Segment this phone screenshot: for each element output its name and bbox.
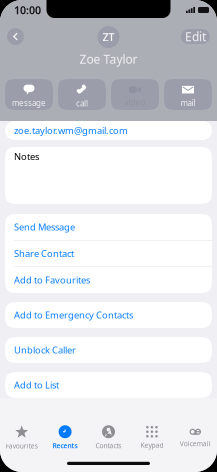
staticText: Edit (185, 29, 206, 44)
button[interactable]: Unblock Caller (5, 337, 212, 363)
staticText: Contacts (95, 441, 121, 450)
button[interactable]: Contacts (87, 425, 130, 450)
staticText: Recents (53, 441, 78, 450)
staticText: Unblock Caller (14, 344, 76, 356)
button[interactable]: Recents (43, 425, 87, 450)
staticText: call (76, 98, 88, 109)
staticText: Add to Emergency Contacts (14, 309, 133, 321)
staticText: video (124, 97, 145, 108)
staticText: zoe.taylor.wm@gmail.com (14, 124, 128, 137)
button[interactable]: Voicemail (174, 427, 217, 448)
staticText: Notes (14, 150, 39, 163)
button[interactable]: mail (164, 79, 212, 110)
staticText: Add to Favourites (14, 274, 90, 286)
staticText: Send Message (14, 221, 75, 233)
staticText: 10:00 (14, 3, 41, 17)
staticText: Voicemail (180, 439, 211, 448)
button[interactable]: call (58, 79, 106, 110)
button[interactable]: Add to Emergency Contacts (5, 302, 212, 328)
button[interactable]: video (111, 79, 159, 110)
button[interactable]: Add to Favourites (5, 267, 212, 293)
button[interactable]: Back (7, 28, 24, 45)
button[interactable]: Share Contact (5, 240, 212, 266)
staticText: Add to List (14, 379, 59, 391)
button[interactable]: Add to List (5, 372, 212, 398)
staticText: Keypad (140, 441, 163, 450)
staticText: ZT (102, 30, 114, 44)
button[interactable]: Edit (181, 29, 210, 44)
staticText: mail (180, 98, 195, 108)
button[interactable]: Keypad (130, 426, 174, 450)
staticText: Favourites (6, 441, 38, 450)
button[interactable]: Send Message (5, 214, 212, 240)
staticText: Zoe Taylor (79, 51, 137, 67)
staticText: Share Contact (14, 247, 74, 260)
button[interactable]: Favourites (0, 425, 43, 450)
button[interactable]: message (5, 79, 53, 110)
staticText: message (12, 98, 46, 108)
